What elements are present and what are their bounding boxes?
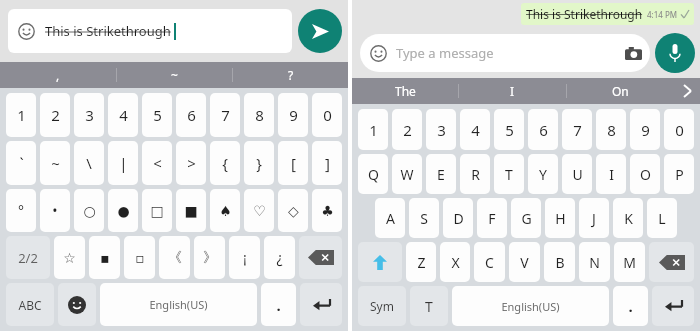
button[interactable]: Shift	[358, 242, 402, 282]
button[interactable]: •	[40, 189, 70, 232]
button[interactable]: M	[614, 242, 645, 282]
button[interactable]: ■	[176, 189, 206, 232]
button[interactable]: N	[579, 242, 610, 282]
button[interactable]: ▫	[124, 236, 155, 279]
button[interactable]: 1	[358, 109, 388, 150]
button[interactable]: ¿	[264, 236, 295, 279]
button[interactable]: 7	[562, 109, 592, 150]
button[interactable]: 4	[460, 109, 490, 150]
button[interactable]: T	[494, 154, 524, 194]
button[interactable]: 7	[210, 93, 240, 137]
button[interactable]: |	[108, 141, 138, 185]
button[interactable]: ?	[233, 62, 348, 88]
button[interactable]: Y	[528, 154, 558, 194]
button[interactable]: Q	[358, 154, 388, 194]
button[interactable]: 5	[494, 109, 524, 150]
button[interactable]: 《	[159, 236, 190, 279]
button[interactable]: ▪	[89, 236, 120, 279]
button[interactable]: Camera	[625, 47, 642, 60]
button[interactable]: 8	[596, 109, 626, 150]
button[interactable]: .	[613, 286, 648, 326]
button[interactable]: I	[459, 78, 566, 104]
button[interactable]: 0	[312, 93, 342, 137]
button[interactable]: ○	[74, 189, 104, 232]
button[interactable]: ◇	[278, 189, 308, 232]
button[interactable]: 5	[142, 93, 172, 137]
button[interactable]: 3	[74, 93, 104, 137]
button[interactable]: Voice message	[655, 33, 695, 73]
button[interactable]: 1	[6, 93, 36, 137]
button[interactable]: English(US)	[452, 286, 609, 326]
button[interactable]: P	[664, 154, 694, 194]
button[interactable]: Handwriting	[410, 286, 448, 326]
button[interactable]: ~	[117, 62, 232, 88]
button[interactable]: ¡	[229, 236, 260, 279]
button[interactable]: On	[567, 78, 674, 104]
button[interactable]: H	[545, 198, 575, 238]
button[interactable]: [	[278, 141, 308, 185]
button[interactable]: B	[544, 242, 575, 282]
button[interactable]: 3	[426, 109, 456, 150]
button[interactable]: 2/2	[6, 236, 50, 279]
button[interactable]: J	[579, 198, 609, 238]
button[interactable]: Send	[298, 9, 342, 53]
button[interactable]: <	[142, 141, 172, 185]
button[interactable]: ●	[108, 189, 138, 232]
button[interactable]: A	[375, 198, 405, 238]
button[interactable]: Backspace	[299, 236, 342, 279]
button[interactable]: 2	[40, 93, 70, 137]
button[interactable]: 9	[278, 93, 308, 137]
button[interactable]: Backspace	[649, 242, 694, 282]
button[interactable]: O	[630, 154, 660, 194]
button[interactable]: °	[6, 189, 36, 232]
button[interactable]: ♣	[312, 189, 342, 232]
button[interactable]: This is Strikethrough	[521, 3, 694, 25]
button[interactable]: .	[261, 283, 296, 326]
button[interactable]: Enter	[652, 286, 694, 326]
button[interactable]: ♠	[210, 189, 240, 232]
button[interactable]: {	[210, 141, 240, 185]
button[interactable]: 2	[392, 109, 422, 150]
button[interactable]: ABC	[6, 283, 54, 326]
button[interactable]: R	[460, 154, 490, 194]
button[interactable]: I	[596, 154, 626, 194]
button[interactable]: G	[511, 198, 541, 238]
button[interactable]: L	[647, 198, 677, 238]
button[interactable]: ~	[40, 141, 70, 185]
button[interactable]: Type a message	[360, 34, 650, 72]
button[interactable]: }	[244, 141, 274, 185]
button[interactable]: 9	[630, 109, 660, 150]
button[interactable]: 8	[244, 93, 274, 137]
button[interactable]: \	[74, 141, 104, 185]
button[interactable]: S	[409, 198, 439, 238]
button[interactable]: C	[474, 242, 505, 282]
button[interactable]: More suggestions	[674, 78, 700, 104]
button[interactable]: ]	[312, 141, 342, 185]
button[interactable]: U	[562, 154, 592, 194]
button[interactable]: X	[440, 242, 470, 282]
button[interactable]: Emoji	[58, 283, 96, 326]
button[interactable]: 6	[176, 93, 206, 137]
button[interactable]: >	[176, 141, 206, 185]
button[interactable]: V	[509, 242, 540, 282]
button[interactable]: Sym	[358, 286, 406, 326]
button[interactable]: ♡	[244, 189, 274, 232]
button[interactable]: □	[142, 189, 172, 232]
button[interactable]: K	[613, 198, 643, 238]
button[interactable]: Enter	[300, 283, 342, 326]
button[interactable]: E	[426, 154, 456, 194]
button[interactable]: 》	[194, 236, 225, 279]
button[interactable]: Z	[406, 242, 436, 282]
button[interactable]: F	[477, 198, 507, 238]
button[interactable]: English(US)	[100, 283, 257, 326]
button[interactable]: 0	[664, 109, 694, 150]
button[interactable]: This is Strikethrough	[8, 9, 292, 53]
button[interactable]: W	[392, 154, 422, 194]
button[interactable]: The	[352, 78, 458, 104]
button[interactable]: ,	[0, 62, 116, 88]
button[interactable]: 4	[108, 93, 138, 137]
button[interactable]: ☆	[54, 236, 85, 279]
button[interactable]: `	[6, 141, 36, 185]
button[interactable]: 6	[528, 109, 558, 150]
button[interactable]: D	[443, 198, 473, 238]
